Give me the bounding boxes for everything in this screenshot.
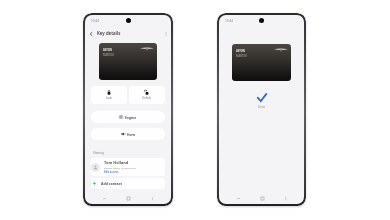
button[interactable]: Back xyxy=(280,193,290,203)
staticText: Unlock xyxy=(142,96,152,100)
button[interactable]: Tom Holland xyxy=(91,158,165,176)
button[interactable]: Recents xyxy=(233,193,243,203)
staticText: MARTIN xyxy=(103,53,114,57)
button[interactable]: More options xyxy=(160,28,171,39)
button[interactable]: Horn xyxy=(91,128,165,140)
staticText: Done xyxy=(258,105,266,109)
button[interactable]: Lock xyxy=(91,86,127,104)
button[interactable]: Add contact xyxy=(91,178,165,189)
button[interactable]: Back xyxy=(85,28,96,39)
staticText: ASTON xyxy=(103,48,112,52)
staticText: Expires 08:00, 12 June 2024 xyxy=(104,166,136,169)
staticText: MARTIN xyxy=(236,54,247,58)
button[interactable]: Back xyxy=(147,193,157,203)
staticText: Key details xyxy=(97,30,121,36)
staticText: ASTON xyxy=(236,49,245,53)
staticText: Tom Holland xyxy=(104,160,129,165)
staticText: 10:44 xyxy=(91,19,100,23)
button[interactable]: Unlock xyxy=(129,86,165,104)
button[interactable]: Recents xyxy=(99,193,109,203)
button[interactable]: Home xyxy=(257,193,267,203)
staticText: Lock xyxy=(106,96,112,100)
staticText: 10:44 xyxy=(225,19,234,23)
staticText: Horn xyxy=(127,132,136,136)
staticText: Add contact xyxy=(101,181,122,186)
button[interactable]: Home xyxy=(123,193,133,203)
staticText: Engine xyxy=(125,115,137,119)
staticText: Edit access xyxy=(104,170,119,174)
staticText: Sharing xyxy=(93,151,104,155)
button[interactable]: Engine xyxy=(91,111,165,123)
